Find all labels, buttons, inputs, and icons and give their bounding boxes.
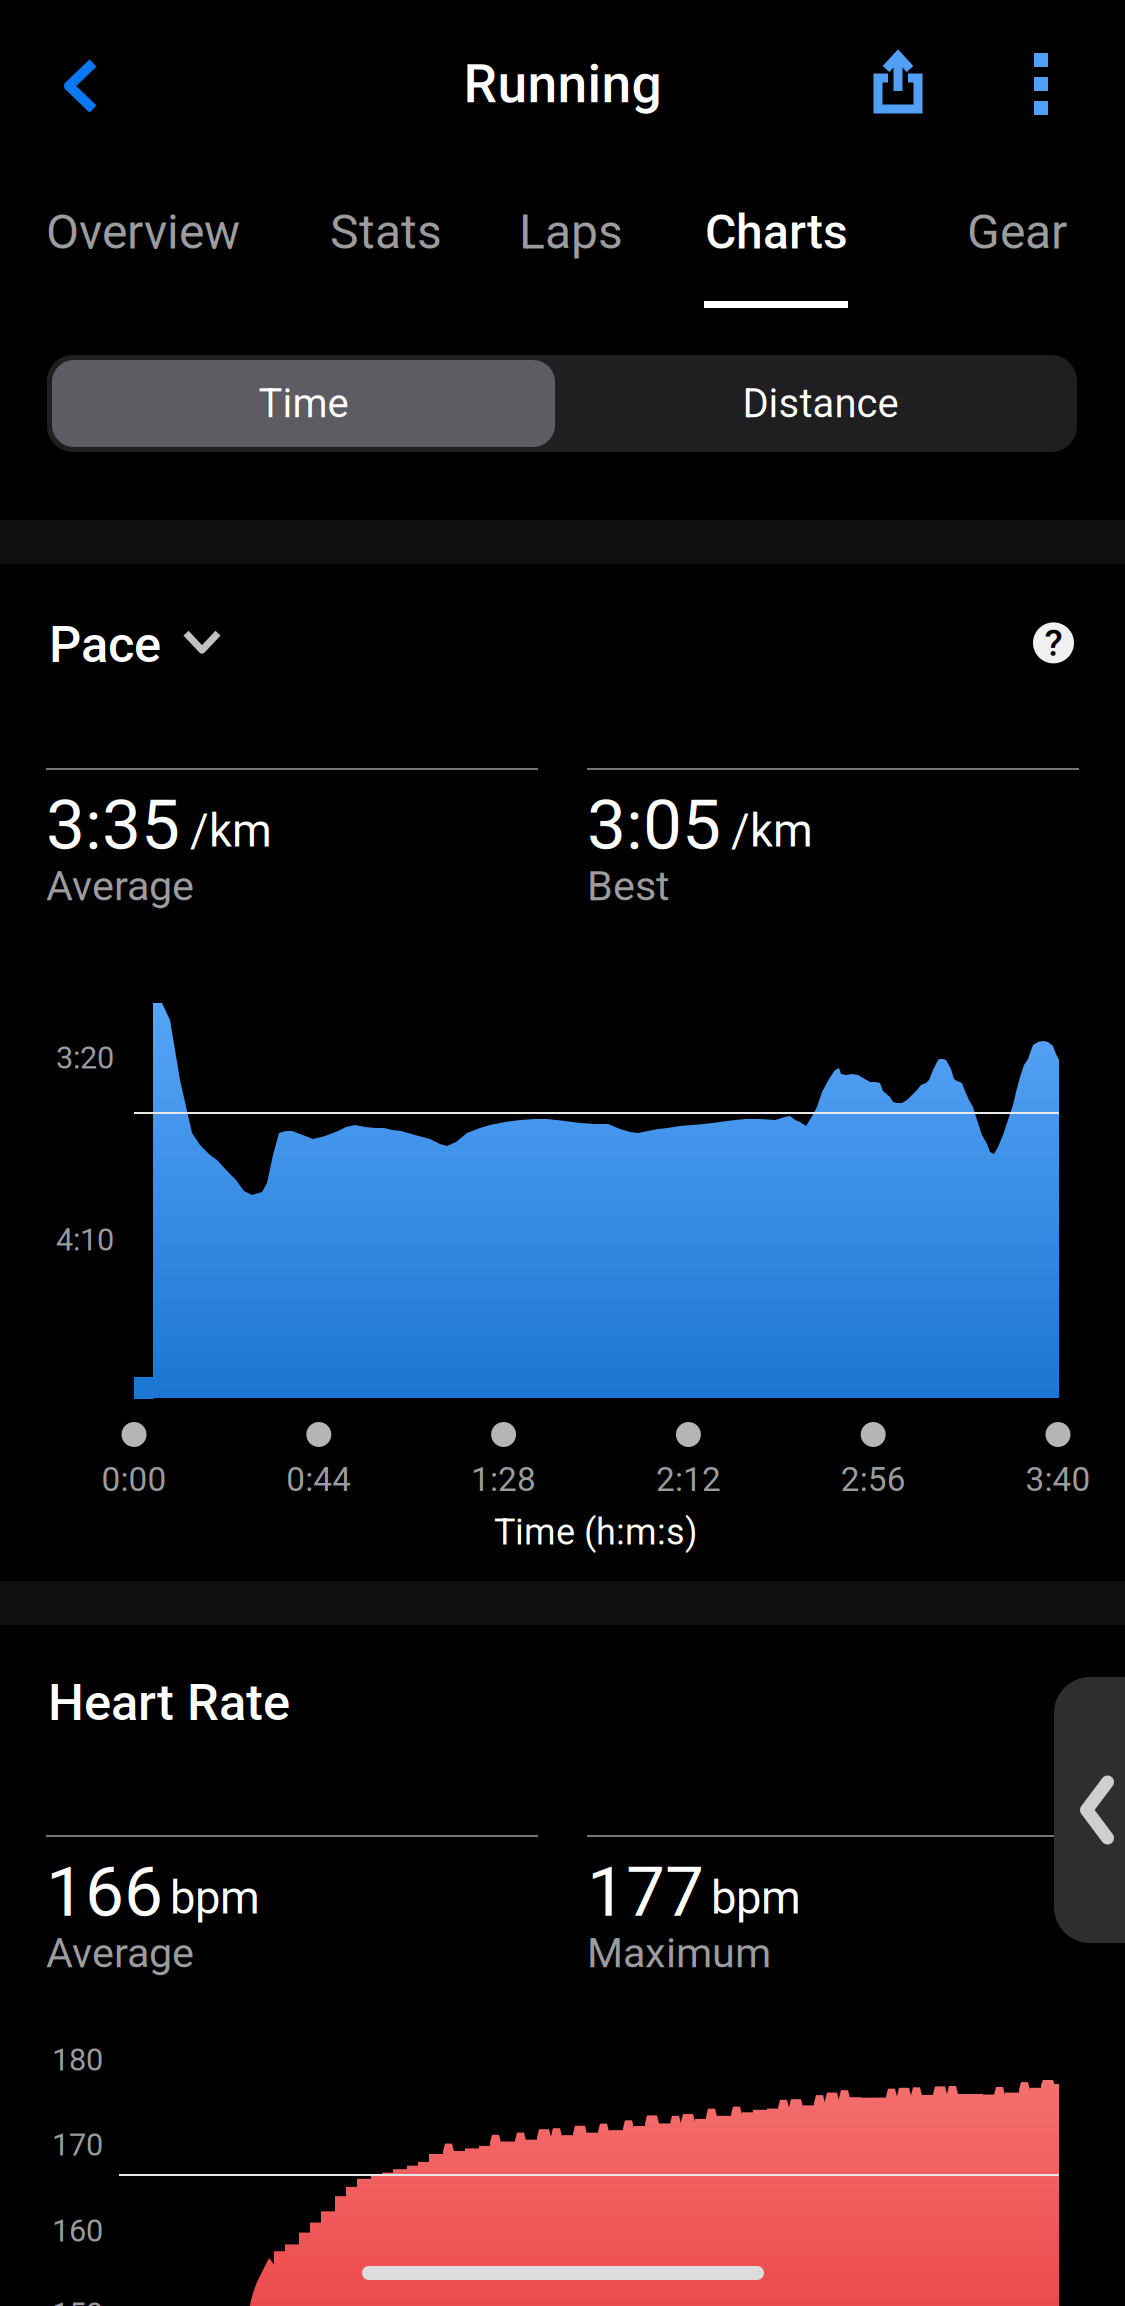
staticText: 150 (52, 2296, 103, 2306)
button[interactable]: Help (1013, 601, 1094, 685)
button[interactable]: Distance (569, 360, 1072, 447)
staticText: Distance (742, 380, 898, 427)
staticText: /km (731, 804, 813, 857)
button[interactable]: Charts (691, 190, 862, 274)
button[interactable]: Stats (316, 190, 456, 274)
staticText: Running (463, 53, 661, 115)
staticText: 3:35 (46, 784, 180, 866)
staticText: bpm (170, 1871, 260, 1924)
button[interactable]: Pace (35, 601, 236, 688)
staticText: ? (1044, 621, 1062, 665)
staticText: 4:10 (56, 1222, 114, 1258)
staticText: Average (46, 1929, 194, 1977)
staticText: /km (190, 804, 272, 857)
staticText: 180 (52, 2042, 103, 2078)
button[interactable]: Gear (953, 190, 1081, 274)
staticText: 2:56 (841, 1460, 906, 1499)
staticText: Average (46, 862, 194, 910)
button[interactable]: More options (1008, 27, 1074, 141)
staticText: 3:05 (587, 784, 721, 866)
button[interactable]: Time (52, 360, 555, 447)
staticText: Time (258, 380, 348, 427)
staticText: 166 (46, 1851, 163, 1933)
staticText: Pace (49, 615, 161, 674)
button[interactable]: Back (36, 31, 126, 141)
staticText: 3:20 (56, 1040, 114, 1076)
staticText: 2:12 (656, 1460, 721, 1499)
staticText: Best (587, 862, 670, 910)
staticText: 170 (52, 2127, 103, 2163)
staticText: 0:44 (286, 1460, 351, 1499)
button[interactable]: Laps (505, 190, 637, 274)
button[interactable]: Share (851, 27, 945, 136)
staticText: 1:28 (471, 1460, 536, 1499)
staticText: Charts (705, 204, 848, 260)
staticText: Gear (967, 204, 1067, 260)
staticText: Overview (46, 204, 240, 260)
button[interactable]: Overview (32, 190, 254, 274)
staticText: 177 (587, 1851, 704, 1933)
staticText: Maximum (587, 1929, 771, 1977)
button[interactable]: Open panel (1054, 1677, 1125, 1943)
staticText: 160 (52, 2213, 103, 2249)
staticText: Heart Rate (48, 1673, 290, 1732)
staticText: bpm (711, 1871, 801, 1924)
staticText: Stats (330, 204, 442, 260)
staticText: Time (h:m:s) (494, 1511, 698, 1553)
staticText: Laps (519, 204, 623, 260)
staticText: 0:00 (101, 1460, 166, 1499)
staticText: 3:40 (1025, 1460, 1090, 1499)
